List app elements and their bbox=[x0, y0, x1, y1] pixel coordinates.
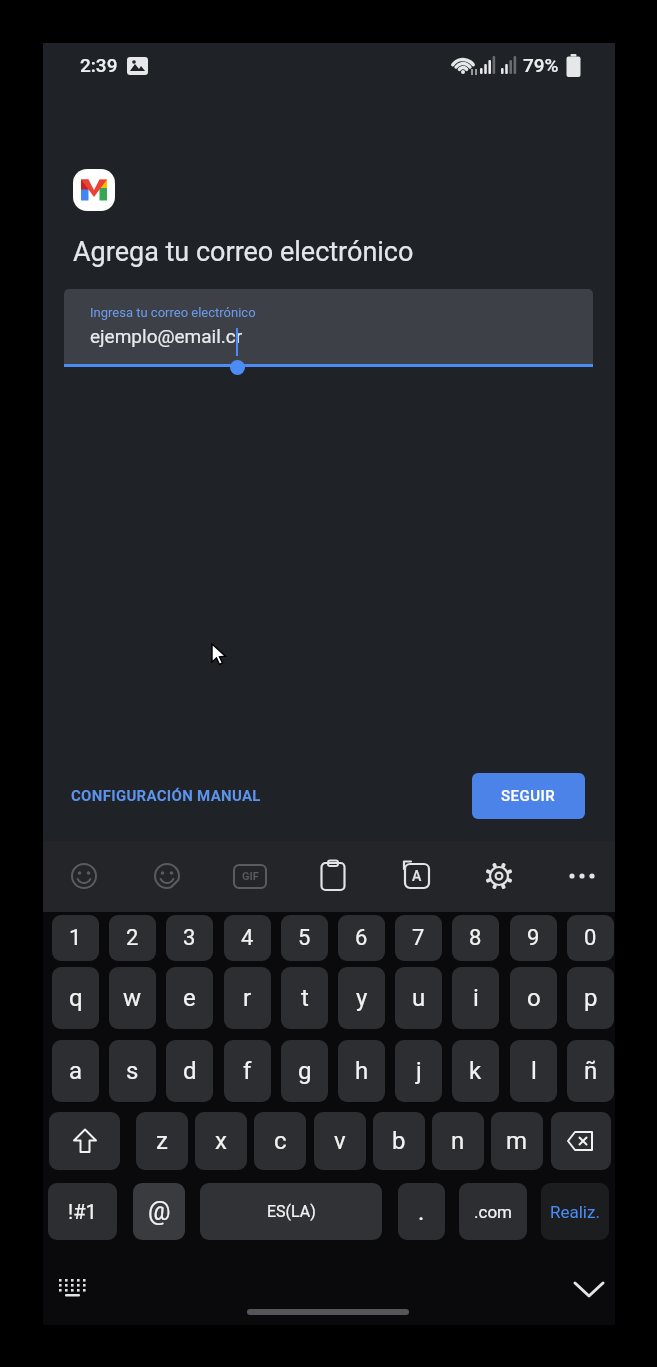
button[interactable]: d bbox=[166, 1040, 213, 1102]
staticText: l bbox=[531, 1057, 537, 1085]
button[interactable]: 8 bbox=[452, 915, 499, 961]
staticText: 4 bbox=[241, 925, 254, 951]
staticText: 6 bbox=[355, 925, 368, 951]
staticText: A bbox=[412, 868, 422, 884]
staticText: 1 bbox=[69, 925, 82, 951]
staticText: .com bbox=[474, 1202, 512, 1222]
staticText: k bbox=[469, 1057, 482, 1085]
button[interactable] bbox=[49, 1112, 120, 1170]
button[interactable]: @ bbox=[133, 1183, 185, 1240]
button[interactable]: t bbox=[281, 967, 328, 1029]
button[interactable]: Realiz. bbox=[541, 1183, 609, 1240]
button[interactable]: !#1 bbox=[48, 1183, 117, 1240]
button[interactable]: b bbox=[373, 1112, 425, 1170]
staticText: ES(LA) bbox=[267, 1202, 316, 1221]
staticText: 8 bbox=[469, 925, 482, 951]
staticText: 2 bbox=[126, 925, 139, 951]
staticText: w bbox=[123, 984, 142, 1012]
staticText: u bbox=[412, 984, 426, 1012]
staticText: CONFIGURACIÓN MANUAL bbox=[71, 787, 261, 805]
button[interactable]: 0 bbox=[567, 915, 614, 961]
button[interactable]: 6 bbox=[338, 915, 385, 961]
staticText: o bbox=[527, 984, 541, 1012]
button[interactable]: Ingresa tu correo electrónico bbox=[64, 289, 593, 367]
button[interactable] bbox=[152, 861, 182, 891]
button[interactable]: 9 bbox=[510, 915, 557, 961]
button[interactable] bbox=[484, 861, 514, 891]
button[interactable]: k bbox=[452, 1040, 499, 1102]
button[interactable]: 7 bbox=[395, 915, 442, 961]
button[interactable]: CONFIGURACIÓN MANUAL bbox=[71, 787, 261, 805]
button[interactable]: a bbox=[52, 1040, 99, 1102]
button[interactable]: n bbox=[432, 1112, 484, 1170]
button[interactable]: w bbox=[109, 967, 156, 1029]
staticText: p bbox=[584, 984, 598, 1012]
button[interactable]: 4 bbox=[224, 915, 271, 961]
staticText: a bbox=[69, 1057, 83, 1085]
button[interactable]: GIF bbox=[233, 864, 267, 889]
button[interactable]: r bbox=[224, 967, 271, 1029]
button[interactable]: h bbox=[338, 1040, 385, 1102]
button[interactable]: z bbox=[136, 1112, 188, 1170]
button[interactable]: j bbox=[395, 1040, 442, 1102]
button[interactable]: f bbox=[224, 1040, 271, 1102]
staticText: g bbox=[298, 1057, 312, 1085]
button[interactable]: 1 bbox=[52, 915, 99, 961]
button[interactable]: l bbox=[510, 1040, 557, 1102]
button[interactable]: ES(LA) bbox=[200, 1183, 382, 1240]
staticText: . bbox=[418, 1198, 425, 1226]
button[interactable]: s bbox=[109, 1040, 156, 1102]
staticText: b bbox=[392, 1127, 406, 1155]
staticText: r bbox=[243, 984, 252, 1012]
staticText: 0 bbox=[584, 925, 597, 951]
button[interactable]: e bbox=[166, 967, 213, 1029]
staticText: i bbox=[473, 984, 479, 1012]
staticText: !#1 bbox=[68, 1200, 97, 1223]
button[interactable]: 5 bbox=[281, 915, 328, 961]
button[interactable]: SEGUIR bbox=[472, 773, 585, 819]
button[interactable]: o bbox=[510, 967, 557, 1029]
staticText: c bbox=[274, 1127, 287, 1155]
button[interactable]: i bbox=[452, 967, 499, 1029]
staticText: s bbox=[126, 1057, 139, 1085]
button[interactable]: m bbox=[491, 1112, 543, 1170]
staticText: n bbox=[451, 1127, 465, 1155]
button[interactable] bbox=[69, 861, 99, 891]
staticText: q bbox=[69, 984, 83, 1012]
button[interactable]: p bbox=[567, 967, 614, 1029]
button[interactable]: g bbox=[281, 1040, 328, 1102]
staticText: 2:39 bbox=[80, 54, 118, 76]
staticText: j bbox=[416, 1057, 422, 1085]
staticText: @ bbox=[148, 1197, 171, 1226]
button[interactable]: x bbox=[195, 1112, 247, 1170]
button[interactable]: y bbox=[338, 967, 385, 1029]
button[interactable]: u bbox=[395, 967, 442, 1029]
button[interactable]: q bbox=[52, 967, 99, 1029]
button[interactable]: . bbox=[398, 1183, 445, 1240]
button[interactable] bbox=[567, 861, 597, 891]
staticText: e bbox=[183, 984, 196, 1012]
staticText: 79% bbox=[523, 54, 559, 76]
staticText: Realiz. bbox=[550, 1202, 600, 1222]
staticText: SEGUIR bbox=[501, 787, 556, 805]
button[interactable] bbox=[551, 1112, 611, 1170]
button[interactable]: .com bbox=[459, 1183, 527, 1240]
staticText: x bbox=[215, 1127, 227, 1155]
button[interactable]: 2 bbox=[109, 915, 156, 961]
button[interactable]: A bbox=[401, 860, 432, 891]
button[interactable] bbox=[320, 860, 346, 891]
staticText: 7 bbox=[412, 925, 425, 951]
staticText: 9 bbox=[527, 925, 540, 951]
button[interactable] bbox=[56, 1277, 92, 1303]
staticText: ejemplo@email.cr bbox=[90, 325, 243, 347]
button[interactable]: v bbox=[314, 1112, 366, 1170]
staticText: ñ bbox=[584, 1057, 598, 1085]
staticText: h bbox=[355, 1057, 369, 1085]
button[interactable] bbox=[574, 1281, 604, 1299]
button[interactable]: ñ bbox=[567, 1040, 614, 1102]
staticText: Agrega tu correo electrónico bbox=[73, 236, 414, 268]
button[interactable]: 3 bbox=[166, 915, 213, 961]
staticText: d bbox=[183, 1057, 197, 1085]
button[interactable]: c bbox=[254, 1112, 306, 1170]
staticText: 3 bbox=[183, 925, 196, 951]
